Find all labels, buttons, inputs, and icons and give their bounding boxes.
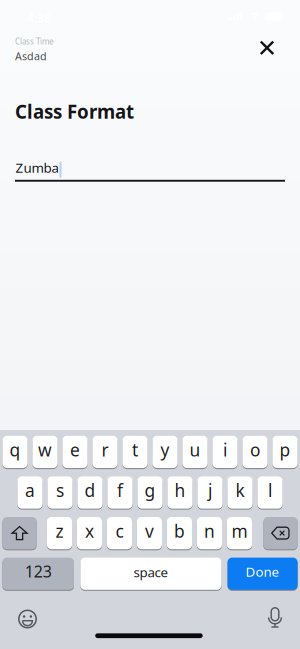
staticText: h xyxy=(174,479,185,502)
staticText: Class Time xyxy=(15,36,54,47)
staticText: q xyxy=(9,438,20,461)
button[interactable]: n xyxy=(197,517,222,549)
button[interactable]: Emoji xyxy=(12,604,42,634)
staticText: y xyxy=(160,438,169,461)
button[interactable]: i xyxy=(212,436,238,468)
staticText: n xyxy=(204,519,215,542)
staticText: e xyxy=(70,438,80,461)
staticText: 123 xyxy=(25,561,52,582)
button[interactable]: g xyxy=(137,476,163,509)
staticText: Zumba xyxy=(15,159,58,176)
button[interactable]: m xyxy=(227,517,252,549)
button[interactable]: Class Format text field xyxy=(15,159,285,182)
button[interactable]: t xyxy=(122,436,148,468)
button[interactable]: Close xyxy=(254,35,280,61)
button[interactable]: j xyxy=(197,476,223,509)
staticText: c xyxy=(115,519,123,542)
button[interactable]: r xyxy=(92,436,118,468)
button[interactable]: a xyxy=(17,476,43,509)
button[interactable]: h xyxy=(167,476,193,509)
button[interactable]: space xyxy=(80,558,221,590)
button[interactable]: c xyxy=(107,517,132,549)
button[interactable]: v xyxy=(137,517,162,549)
button[interactable]: b xyxy=(167,517,192,549)
staticText: w xyxy=(38,438,52,461)
button[interactable]: Delete xyxy=(263,517,298,549)
staticText: space xyxy=(133,563,168,581)
staticText: d xyxy=(84,479,95,502)
staticText: o xyxy=(250,438,260,461)
staticText: v xyxy=(145,519,154,542)
button[interactable]: p xyxy=(272,436,298,468)
staticText: z xyxy=(55,519,63,542)
button[interactable]: z xyxy=(47,517,72,549)
staticText: p xyxy=(279,438,290,461)
button[interactable]: 123 xyxy=(2,558,74,590)
button[interactable]: e xyxy=(62,436,88,468)
button[interactable]: s xyxy=(47,476,73,509)
staticText: a xyxy=(25,479,35,502)
button[interactable]: d xyxy=(77,476,103,509)
button[interactable]: o xyxy=(242,436,268,468)
staticText: s xyxy=(56,479,64,502)
staticText: r xyxy=(101,438,108,461)
button[interactable]: q xyxy=(2,436,28,468)
button[interactable]: Done xyxy=(227,558,298,590)
staticText: b xyxy=(174,519,185,542)
staticText: k xyxy=(235,479,244,502)
staticText: Asdad xyxy=(15,49,47,63)
staticText: m xyxy=(231,519,247,542)
button[interactable]: f xyxy=(107,476,133,509)
button[interactable]: y xyxy=(152,436,178,468)
staticText: l xyxy=(268,479,272,502)
staticText: j xyxy=(208,479,212,502)
button[interactable]: x xyxy=(77,517,102,549)
button[interactable]: u xyxy=(182,436,208,468)
staticText: f xyxy=(117,479,123,502)
staticText: Done xyxy=(246,563,280,580)
staticText: i xyxy=(223,438,227,461)
staticText: u xyxy=(189,438,200,461)
staticText: Class Format xyxy=(15,99,134,124)
staticText: x xyxy=(85,519,94,542)
staticText: g xyxy=(144,479,155,502)
button[interactable]: k xyxy=(227,476,253,509)
button[interactable]: Shift xyxy=(2,517,37,549)
staticText: t xyxy=(132,438,138,461)
button[interactable]: w xyxy=(32,436,58,468)
button[interactable]: l xyxy=(257,476,283,509)
button[interactable]: Dictate xyxy=(260,603,290,633)
